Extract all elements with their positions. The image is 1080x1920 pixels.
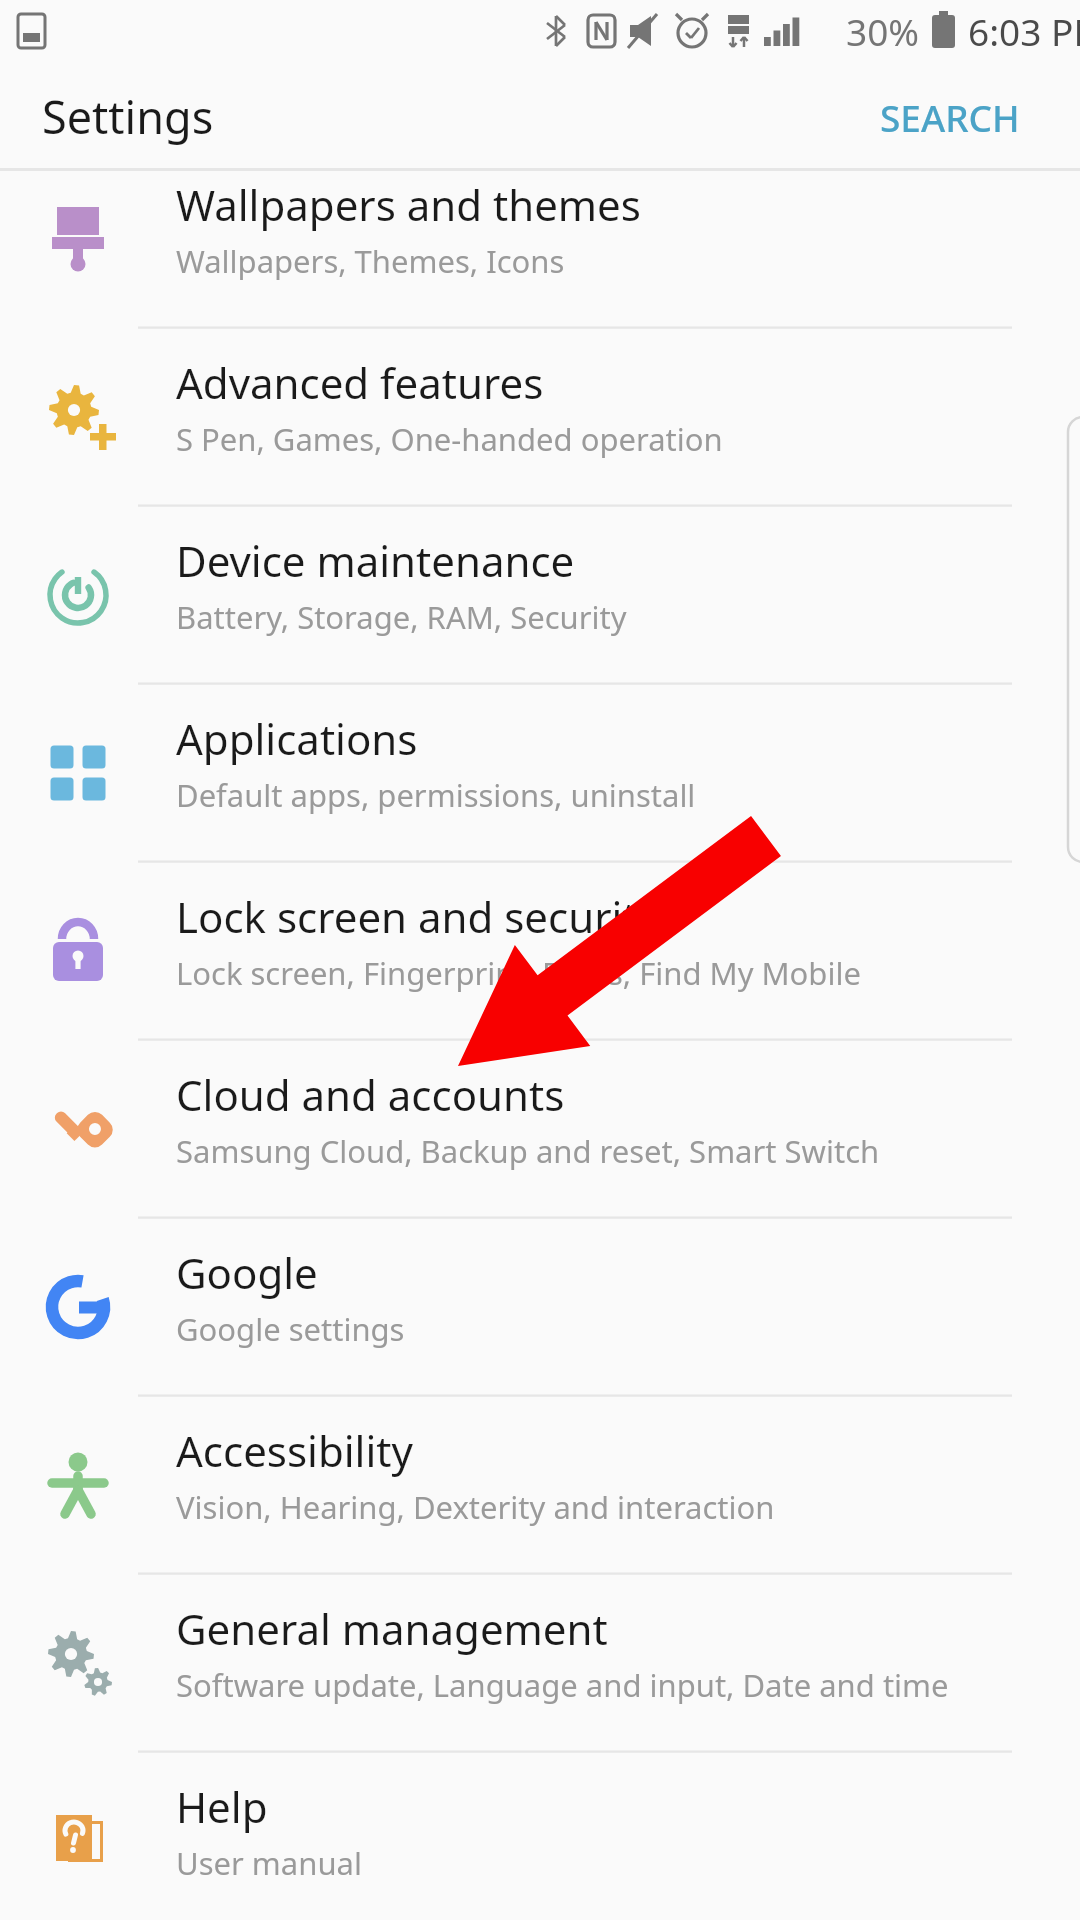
staticText: Default apps, permissions, uninstall [176, 774, 696, 816]
staticText: S Pen, Games, One-handed operation [176, 418, 723, 460]
staticText: Settings [42, 86, 214, 147]
button[interactable]: General management [0, 1574, 1080, 1752]
staticText: Battery, Storage, RAM, Security [176, 596, 627, 638]
staticText: Wallpapers, Themes, Icons [176, 240, 565, 282]
button[interactable]: SEARCH [872, 86, 1028, 148]
staticText: SEARCH [880, 92, 1020, 142]
button[interactable]: Device maintenance [0, 506, 1080, 684]
staticText: Lock screen, Fingerprint, Faces, Find My… [176, 952, 861, 994]
staticText: Help [176, 1778, 268, 1835]
staticText: Wallpapers and themes [176, 176, 641, 233]
button[interactable]: Applications [0, 684, 1080, 862]
staticText: Cloud and accounts [176, 1066, 565, 1123]
button[interactable]: Help [0, 1752, 1080, 1920]
button[interactable]: Google [0, 1218, 1080, 1396]
staticText: Google [176, 1244, 318, 1301]
staticText: Google settings [176, 1308, 405, 1350]
staticText: General management [176, 1600, 608, 1657]
button[interactable]: Cloud and accounts [0, 1040, 1080, 1218]
staticText: Samsung Cloud, Backup and reset, Smart S… [176, 1130, 880, 1172]
button[interactable]: Lock screen and security [0, 862, 1080, 1040]
staticText: Vision, Hearing, Dexterity and interacti… [176, 1486, 775, 1528]
staticText: User manual [176, 1842, 362, 1884]
staticText: 30% [846, 6, 920, 56]
button[interactable]: Advanced features [0, 328, 1080, 506]
button[interactable]: Wallpapers and themes [0, 150, 1080, 328]
staticText: Device maintenance [176, 532, 575, 589]
staticText: Software update, Language and input, Dat… [176, 1664, 949, 1706]
staticText: Applications [176, 710, 418, 767]
button[interactable]: Accessibility [0, 1396, 1080, 1574]
staticText: Accessibility [176, 1422, 413, 1479]
staticText: Advanced features [176, 354, 544, 411]
staticText: 6:03 PM [968, 6, 1080, 56]
staticText: Lock screen and security [176, 888, 659, 945]
